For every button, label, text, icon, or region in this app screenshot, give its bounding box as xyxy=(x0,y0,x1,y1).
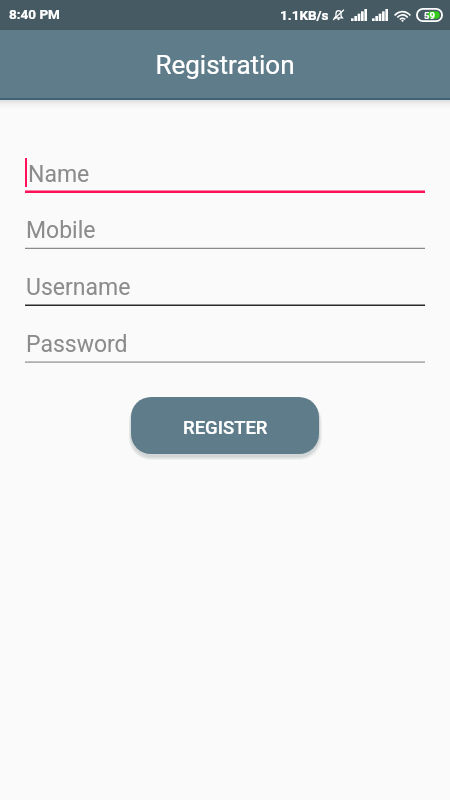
staticText: Mobile xyxy=(26,217,96,244)
staticText: REGISTER xyxy=(183,417,268,439)
button[interactable]: Password xyxy=(25,329,425,363)
button[interactable]: Name xyxy=(25,159,425,193)
staticText: 8:40 PM xyxy=(9,6,60,22)
staticText: 59 xyxy=(424,10,435,21)
staticText: Password xyxy=(26,331,128,358)
button[interactable]: Mobile xyxy=(25,215,425,249)
staticText: Name xyxy=(28,161,90,188)
staticText: Username xyxy=(26,274,131,301)
staticText: Registration xyxy=(155,50,295,80)
button[interactable]: Username xyxy=(25,272,425,306)
button[interactable]: REGISTER xyxy=(131,397,319,454)
staticText: 1.1KB/s xyxy=(280,7,329,23)
